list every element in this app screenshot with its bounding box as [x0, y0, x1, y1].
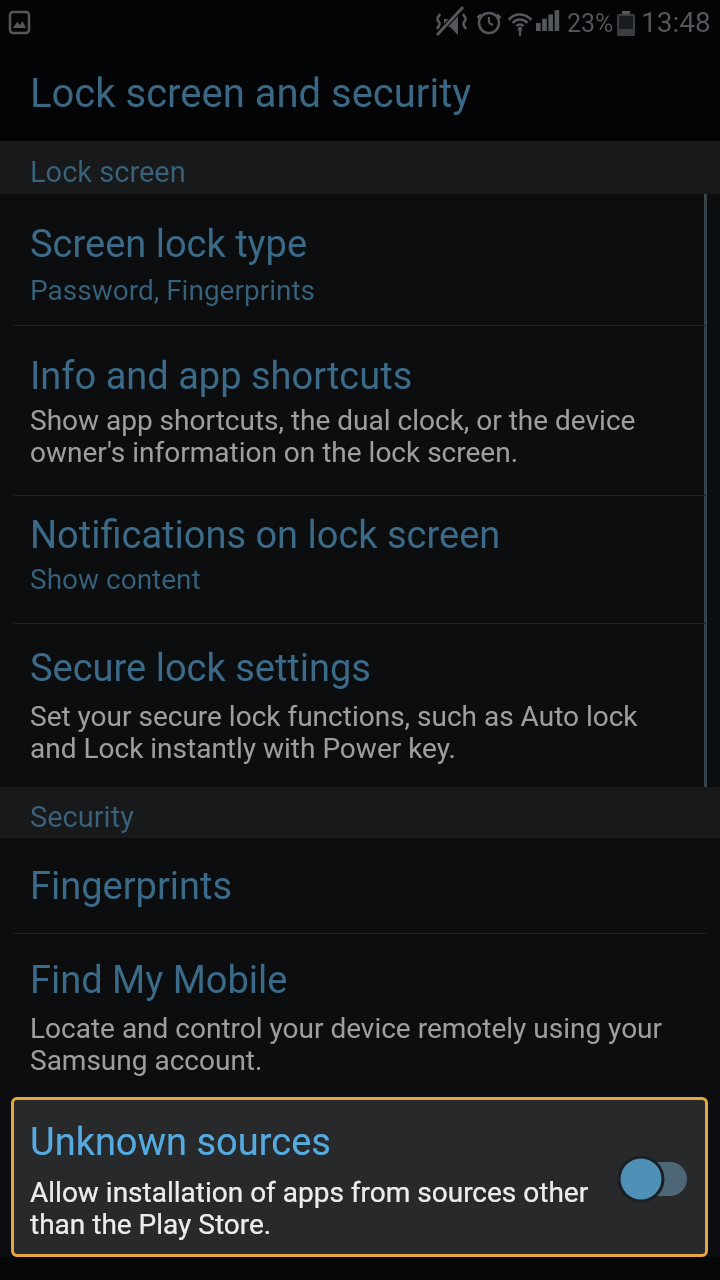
button[interactable]	[0, 838, 720, 933]
staticText: Screen lock type	[30, 222, 308, 267]
button[interactable]	[0, 325, 720, 495]
staticText: Security	[30, 800, 134, 834]
button[interactable]	[0, 623, 720, 787]
staticText: Info and app shortcuts	[30, 354, 413, 399]
button[interactable]	[0, 933, 720, 1088]
staticText: Show app shortcuts, the dual clock, or t…	[30, 404, 636, 469]
button[interactable]	[0, 495, 720, 623]
button[interactable]	[0, 196, 720, 325]
staticText: Find My Mobile	[30, 958, 288, 1003]
staticText: Lock screen and security	[30, 70, 472, 117]
staticText: Allow installation of apps from sources …	[30, 1176, 589, 1241]
staticText: Lock screen	[30, 155, 186, 189]
staticText: Password, Fingerprints	[30, 274, 316, 307]
staticText: Fingerprints	[30, 864, 233, 909]
button[interactable]	[11, 1097, 708, 1257]
staticText: Secure lock settings	[30, 646, 371, 691]
staticText: Set your secure lock functions, such as …	[30, 700, 638, 765]
staticText: Unknown sources	[30, 1120, 331, 1165]
staticText: Notifications on lock screen	[30, 513, 501, 558]
button[interactable]	[600, 1140, 710, 1220]
staticText: 13:48	[641, 6, 711, 39]
staticText: Show content	[30, 563, 201, 596]
staticText: 23%	[567, 9, 614, 38]
staticText: Locate and control your device remotely …	[30, 1012, 663, 1077]
